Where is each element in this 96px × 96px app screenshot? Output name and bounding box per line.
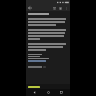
button[interactable]: Archive <box>51 5 57 11</box>
button[interactable]: Recents <box>57 89 66 96</box>
button[interactable]: More options <box>63 5 69 11</box>
button[interactable]: Reply <box>28 86 40 88</box>
button[interactable]: Back <box>27 5 33 11</box>
button[interactable]: Back <box>30 89 39 96</box>
button[interactable] <box>28 66 68 68</box>
button[interactable]: Delete <box>57 5 63 11</box>
button[interactable]: Home <box>44 89 53 96</box>
